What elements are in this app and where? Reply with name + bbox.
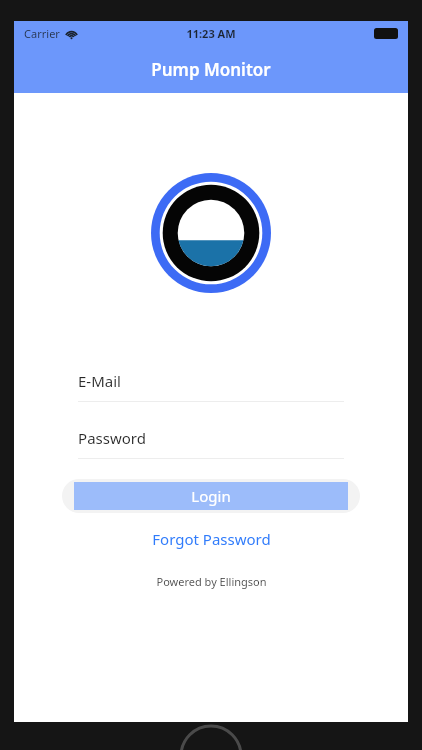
button[interactable]: Password — [78, 428, 344, 459]
staticText: Powered by Ellingson — [156, 574, 267, 589]
staticText: Forgot Password — [152, 529, 271, 549]
staticText: Pump Monitor — [151, 58, 271, 81]
staticText: 11:23 AM — [186, 26, 236, 41]
button[interactable]: Login — [62, 479, 360, 513]
staticText: Password — [78, 428, 146, 448]
other: Pump Monitor logo — [151, 173, 271, 293]
staticText: E-Mail — [78, 371, 121, 391]
button[interactable]: Forgot Password — [140, 526, 283, 552]
staticText: Carrier — [24, 26, 60, 41]
staticText: Login — [191, 486, 231, 506]
button[interactable]: E-Mail — [78, 371, 344, 402]
